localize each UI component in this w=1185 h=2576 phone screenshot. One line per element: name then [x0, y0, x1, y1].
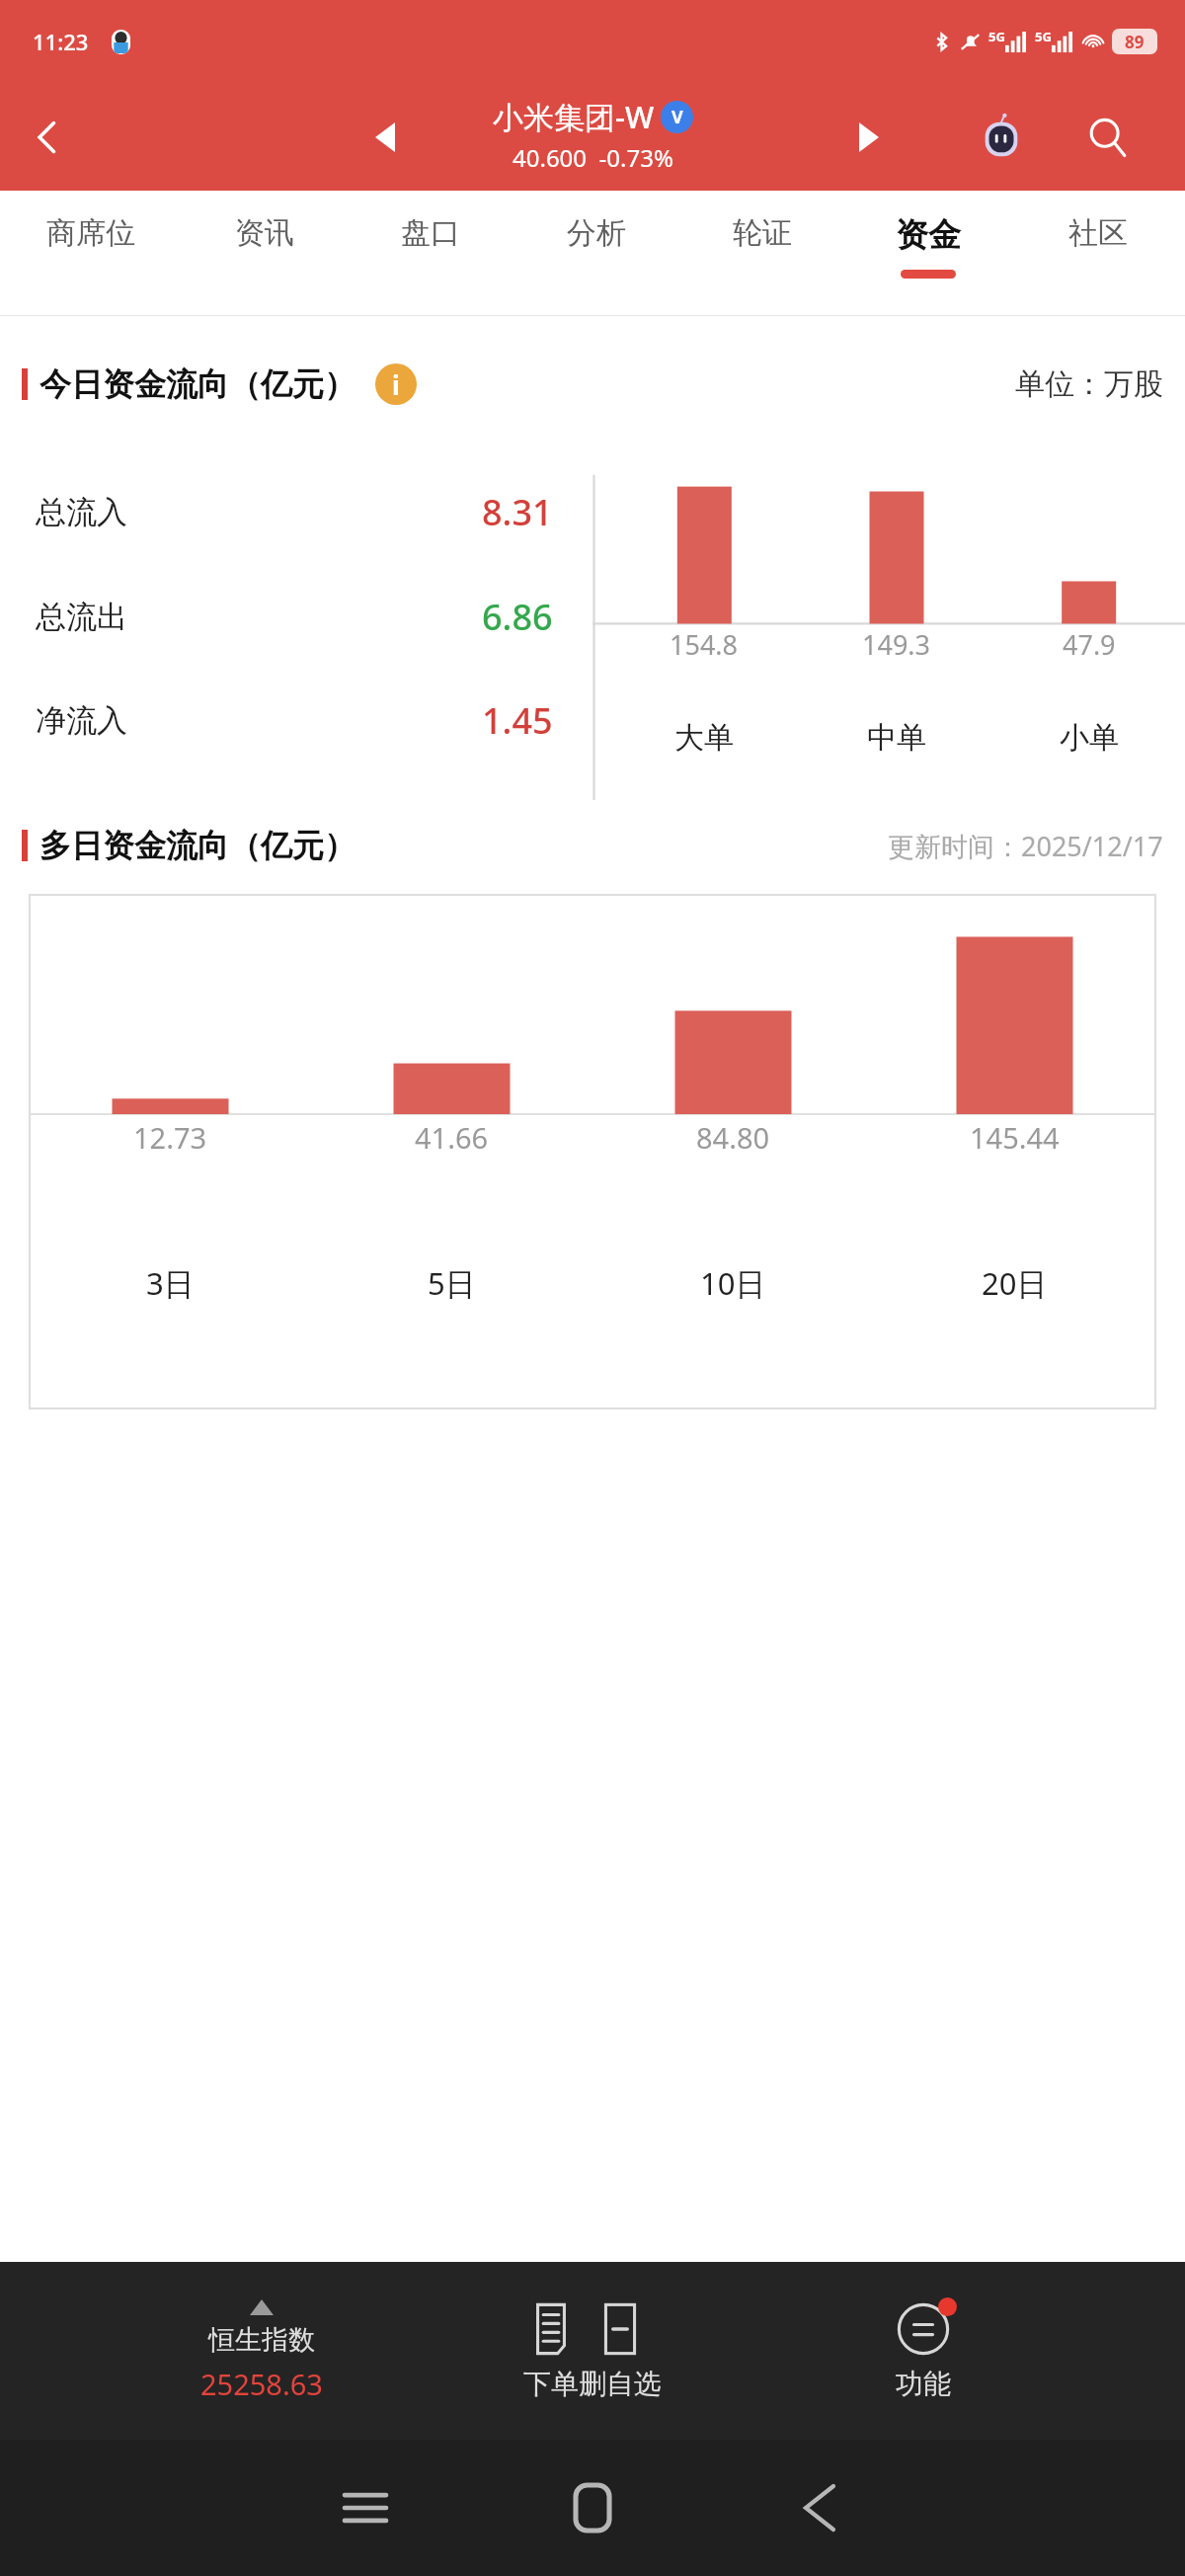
- staticText: 154.8: [670, 626, 739, 663]
- staticText: 89: [1125, 31, 1145, 53]
- staticText: 47.9: [1063, 626, 1116, 663]
- button[interactable]: Previous stock: [355, 108, 415, 167]
- button[interactable]: 轮证: [679, 191, 845, 315]
- staticText: 中单: [867, 719, 926, 757]
- staticText: 资讯: [235, 214, 294, 252]
- staticText: 8.31: [482, 488, 553, 536]
- staticText: 149.3: [862, 626, 931, 663]
- button[interactable]: 分析: [513, 191, 679, 315]
- staticText: 单位：万股: [1015, 365, 1163, 403]
- button[interactable]: Back: [746, 2440, 894, 2576]
- button[interactable]: Back: [0, 90, 95, 185]
- staticText: 资金: [896, 214, 961, 256]
- button[interactable]: 资金: [845, 191, 1011, 315]
- button[interactable]: Next stock: [839, 108, 899, 167]
- staticText: 下单: [523, 2367, 579, 2401]
- button[interactable]: Recent apps: [291, 2440, 439, 2576]
- button[interactable]: 资讯: [182, 191, 348, 315]
- staticText: 3日: [146, 1262, 195, 1304]
- button[interactable]: Search: [1070, 100, 1145, 175]
- staticText: 5G: [1035, 28, 1052, 45]
- staticText: 大单: [674, 719, 734, 757]
- staticText: 今日资金流向（亿元）: [39, 364, 355, 404]
- button[interactable]: Remove from watchlist: [579, 2262, 662, 2440]
- staticText: 净流入: [36, 701, 127, 740]
- staticText: 轮证: [733, 214, 792, 252]
- staticText: 总流入: [36, 493, 127, 531]
- staticText: 41.66: [415, 1118, 489, 1157]
- staticText: 84.80: [696, 1118, 770, 1157]
- staticText: 10日: [700, 1262, 766, 1304]
- staticText: 25258.63: [200, 2365, 323, 2403]
- staticText: 145.44: [970, 1118, 1060, 1157]
- staticText: 总流出: [36, 598, 127, 636]
- button[interactable]: Place order: [523, 2262, 579, 2440]
- staticText: 5G: [988, 28, 1005, 45]
- staticText: 1.45: [482, 696, 553, 745]
- staticText: 5日: [428, 1262, 476, 1304]
- button[interactable]: 社区: [1011, 191, 1185, 315]
- button[interactable]: 盘口: [348, 191, 513, 315]
- staticText: 小单: [1060, 719, 1119, 757]
- staticText: i: [392, 367, 400, 402]
- staticText: 分析: [567, 214, 626, 252]
- staticText: 功能: [896, 2367, 951, 2401]
- staticText: 6.86: [482, 593, 553, 641]
- staticText: 恒生指数: [208, 2323, 315, 2357]
- staticText: 更新时间：2025/12/17: [888, 828, 1163, 864]
- staticText: 社区: [1068, 214, 1128, 252]
- staticText: 11:23: [33, 27, 89, 56]
- staticText: 删自选: [579, 2367, 662, 2401]
- staticText: V: [671, 105, 683, 129]
- staticText: 12.73: [133, 1118, 207, 1157]
- staticText: 盘口: [401, 214, 460, 252]
- staticText: 小米集团-W: [493, 96, 655, 137]
- button[interactable]: 商席位: [0, 191, 182, 315]
- button[interactable]: Home: [518, 2440, 667, 2576]
- staticText: 20日: [982, 1262, 1048, 1304]
- staticText: 商席位: [46, 214, 135, 252]
- staticText: 40.600 -0.73%: [513, 141, 673, 174]
- button[interactable]: 功能: [662, 2262, 1185, 2440]
- staticText: 多日资金流向（亿元）: [39, 826, 355, 865]
- button[interactable]: 恒生指数: [0, 2262, 523, 2440]
- button[interactable]: AI assistant: [966, 102, 1037, 173]
- button[interactable]: Info: [375, 363, 417, 405]
